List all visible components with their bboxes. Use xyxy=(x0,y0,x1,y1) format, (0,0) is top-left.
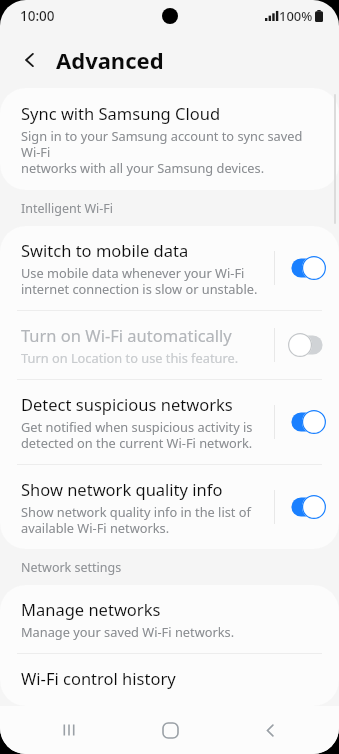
button[interactable]: Show network quality info xyxy=(287,495,327,519)
staticText: Switch to mobile data xyxy=(21,239,189,261)
button[interactable]: Home xyxy=(138,706,202,754)
staticText: Intelligent Wi-Fi xyxy=(21,200,114,217)
staticText: Use mobile data whenever your Wi-Fi inte… xyxy=(21,264,258,297)
staticText: Manage networks xyxy=(21,598,161,620)
staticText: 100% xyxy=(279,7,313,25)
staticText: Wi-Fi control history xyxy=(21,667,176,689)
staticText: Sign in to your Samsung account to sync … xyxy=(21,127,321,176)
button[interactable]: Detect suspicious networks xyxy=(287,410,327,434)
staticText: Sync with Samsung Cloud xyxy=(21,102,221,124)
button[interactable]: Detect suspicious networks xyxy=(0,380,339,464)
staticText: Network settings xyxy=(21,559,122,576)
button[interactable]: Switch to mobile data xyxy=(0,226,339,310)
button[interactable]: Manage networks xyxy=(0,585,339,653)
button[interactable]: Show network quality info xyxy=(0,465,339,549)
staticText: Manage your saved Wi-Fi networks. xyxy=(21,623,235,640)
staticText: Turn on Location to use this feature. xyxy=(21,349,239,366)
staticText: Detect suspicious networks xyxy=(21,393,233,415)
button[interactable]: Wi-Fi control history xyxy=(0,654,339,706)
staticText: Get notified when suspicious activity is… xyxy=(21,418,253,451)
staticText: Turn on Wi-Fi automatically xyxy=(21,324,232,346)
button[interactable]: Turn on Wi-Fi automatically xyxy=(287,333,327,357)
staticText: Advanced xyxy=(56,45,164,75)
button[interactable]: Turn on Wi-Fi automatically xyxy=(0,311,339,379)
button[interactable]: Switch to mobile data xyxy=(287,256,327,280)
button[interactable]: Sync with Samsung Cloud xyxy=(0,88,339,190)
button[interactable]: Back xyxy=(238,706,302,754)
staticText: 10:00 xyxy=(20,7,55,25)
staticText: Show network quality info in the list of… xyxy=(21,503,251,536)
staticText: Show network quality info xyxy=(21,478,223,500)
button[interactable]: Back xyxy=(10,40,50,80)
button[interactable]: Recents xyxy=(37,706,101,754)
